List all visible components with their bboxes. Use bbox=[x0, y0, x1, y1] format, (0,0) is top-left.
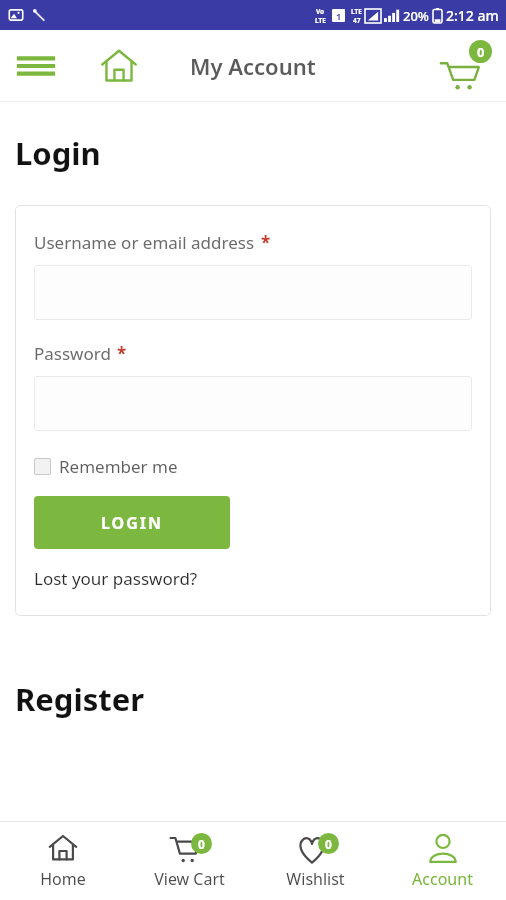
button[interactable]: Menu bbox=[8, 38, 64, 94]
button[interactable]: LOGIN bbox=[34, 496, 230, 549]
staticText: Wishlist bbox=[286, 868, 345, 890]
staticText: View Cart bbox=[154, 868, 225, 890]
button[interactable]: Account bbox=[379, 822, 506, 900]
staticText: Register bbox=[15, 678, 145, 720]
button[interactable] bbox=[34, 376, 472, 431]
staticText: * bbox=[117, 342, 127, 365]
staticText: Account bbox=[412, 868, 473, 890]
staticText: Home bbox=[40, 868, 86, 890]
staticText: 20% bbox=[403, 7, 429, 25]
staticText: Remember me bbox=[59, 455, 178, 478]
staticText: My Account bbox=[190, 51, 316, 81]
button[interactable]: Cart, 0 items bbox=[436, 36, 496, 96]
staticText: Username or email address bbox=[34, 231, 255, 254]
button[interactable]: 0 bbox=[126, 822, 252, 900]
staticText: LTE bbox=[351, 7, 362, 16]
button[interactable]: Home bbox=[90, 37, 148, 95]
staticText: Login bbox=[15, 132, 101, 174]
staticText: Vo bbox=[316, 7, 325, 16]
staticText: * bbox=[261, 231, 271, 254]
staticText: 47 bbox=[353, 16, 361, 25]
staticText: Password bbox=[34, 342, 111, 365]
staticText: LOGIN bbox=[101, 512, 164, 534]
button[interactable]: Remember me bbox=[34, 455, 178, 478]
button[interactable]: 0 bbox=[252, 822, 379, 900]
button[interactable]: Lost your password? bbox=[34, 567, 198, 590]
staticText: 0 bbox=[325, 836, 332, 852]
staticText: 2:12 am bbox=[446, 6, 499, 25]
staticText: 1 bbox=[336, 10, 342, 22]
button[interactable] bbox=[34, 265, 472, 320]
staticText: 0 bbox=[198, 836, 205, 852]
staticText: LTE bbox=[315, 16, 326, 25]
button[interactable]: Home bbox=[0, 822, 126, 900]
staticText: 0 bbox=[477, 43, 485, 61]
